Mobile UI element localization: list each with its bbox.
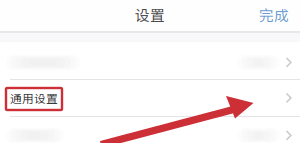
staticText: 设置 <box>135 4 165 25</box>
staticText: 完成 <box>259 4 289 25</box>
button[interactable]: 完成 <box>253 0 295 30</box>
button[interactable]: 通用设置 <box>0 80 300 116</box>
staticText: 通用设置 <box>10 89 58 106</box>
button[interactable]: Settings row <box>0 42 300 79</box>
button[interactable]: Settings row <box>0 117 300 143</box>
